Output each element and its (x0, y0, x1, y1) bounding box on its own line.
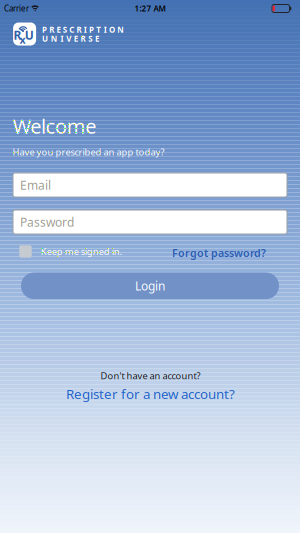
staticText: Register for a new account? (66, 385, 235, 403)
staticText: P (42, 24, 47, 35)
staticText: R (49, 24, 54, 35)
staticText: C (69, 24, 74, 35)
textField[interactable]: Password (20, 214, 280, 230)
staticText: Forgot password? (172, 246, 266, 260)
staticText: E (74, 33, 78, 44)
staticText: I (60, 33, 63, 44)
staticText: U (42, 33, 48, 44)
staticText: N (51, 33, 58, 44)
textField[interactable]: Email (20, 177, 280, 193)
button[interactable]: Register for a new account? (66, 385, 235, 403)
staticText: R (76, 24, 81, 35)
staticText: Login (135, 278, 165, 294)
staticText: Welcome (13, 113, 96, 139)
staticText: V (66, 33, 71, 44)
staticText: I (84, 24, 87, 35)
staticText: Password (20, 214, 74, 230)
button[interactable]: Prescription Universe (13, 22, 36, 45)
staticText: U (25, 27, 34, 43)
staticText: T (96, 24, 101, 35)
staticText: R (80, 33, 85, 44)
staticText: E (95, 33, 99, 44)
staticText: E (56, 24, 60, 35)
staticText: Keep me signed in. (41, 245, 123, 258)
staticText: N (117, 24, 124, 35)
staticText: P (89, 24, 94, 35)
staticText: Carrier (4, 3, 29, 14)
staticText: x (19, 32, 25, 47)
staticText: Don't have an account? (100, 369, 200, 382)
staticText: S (88, 33, 92, 44)
staticText: O (109, 24, 115, 35)
button[interactable]: Forgot password? (172, 246, 266, 260)
button[interactable]: Keep me signed in. (19, 245, 125, 258)
staticText: R (14, 27, 22, 43)
button[interactable]: Login (21, 273, 279, 299)
staticText: Email (20, 177, 51, 193)
staticText: Have you prescribed an app today? (12, 146, 164, 158)
staticText: 1:27 AM (134, 3, 165, 14)
staticText: S (63, 24, 67, 35)
staticText: I (104, 24, 107, 35)
